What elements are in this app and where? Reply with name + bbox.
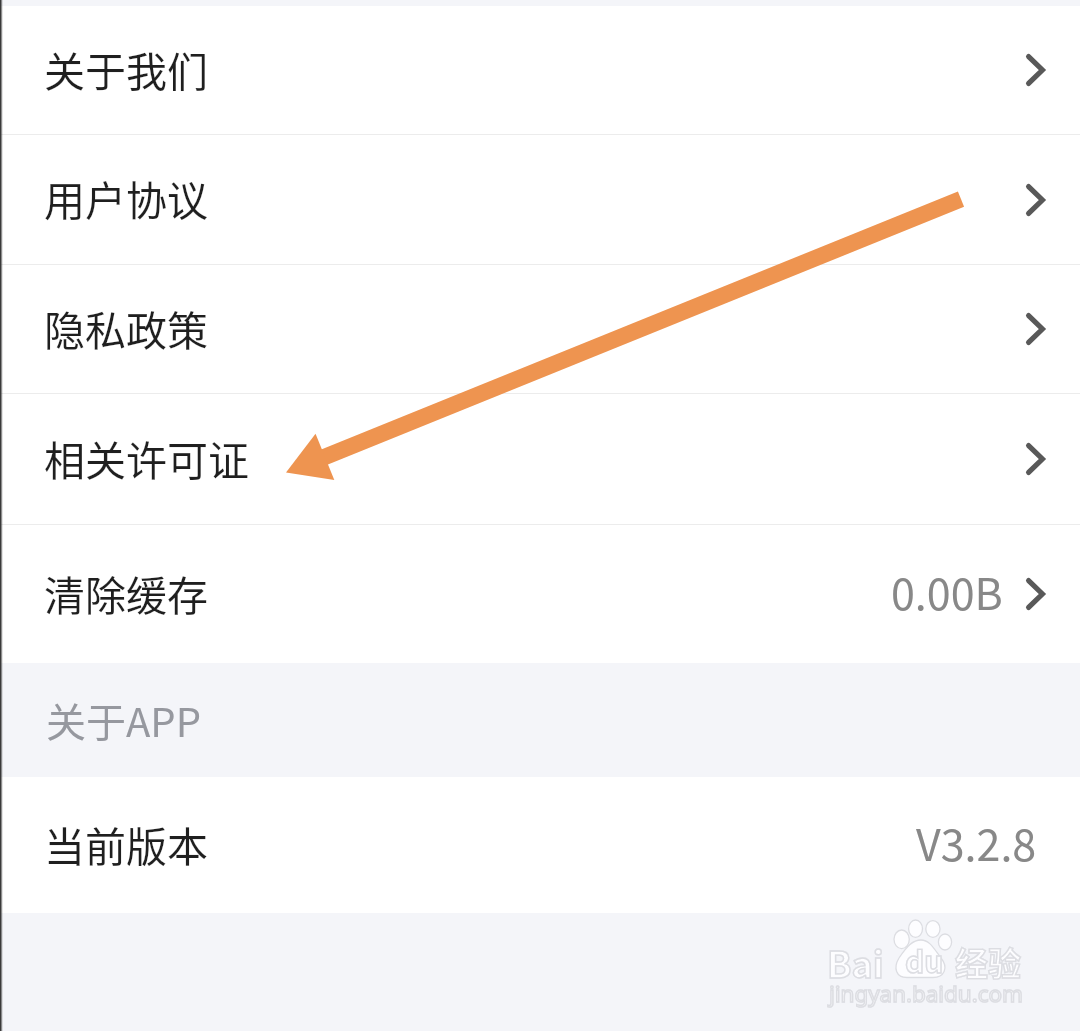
staticText: du [905,938,944,981]
staticText: 经验 [955,938,1021,986]
other: Open 用户协议 [1026,184,1045,216]
staticText: 隐私政策 [44,298,208,357]
staticText: 关于我们 [44,39,208,98]
staticText: 清除缓存 [44,563,208,622]
staticText: Bai [827,936,884,988]
staticText: jingyan.baidu.com [829,978,1023,1009]
other: Open 清除缓存 [1026,578,1045,610]
staticText: V3.2.8 [916,811,1037,873]
staticText: du [905,938,944,981]
button[interactable]: 隐私政策 [0,265,1080,393]
other: Open 关于我们 [1026,54,1045,86]
other: Open 相关许可证 [1026,443,1045,475]
staticText: jingyan.baidu.com [829,978,1023,1009]
button[interactable]: 相关许可证 [0,394,1080,524]
staticText: 用户协议 [44,168,208,227]
staticText: 0.00B [891,560,1003,622]
other: Open 隐私政策 [1026,313,1045,345]
staticText: Bai [827,936,884,988]
button[interactable]: 当前版本 [0,777,1080,913]
staticText: 关于APP [46,691,201,749]
staticText: 经验 [955,938,1021,986]
button[interactable]: 关于我们 [0,6,1080,134]
button[interactable]: 用户协议 [0,135,1080,264]
staticText: 相关许可证 [44,428,249,487]
staticText: 当前版本 [44,814,208,873]
button[interactable]: 清除缓存 [0,525,1080,663]
